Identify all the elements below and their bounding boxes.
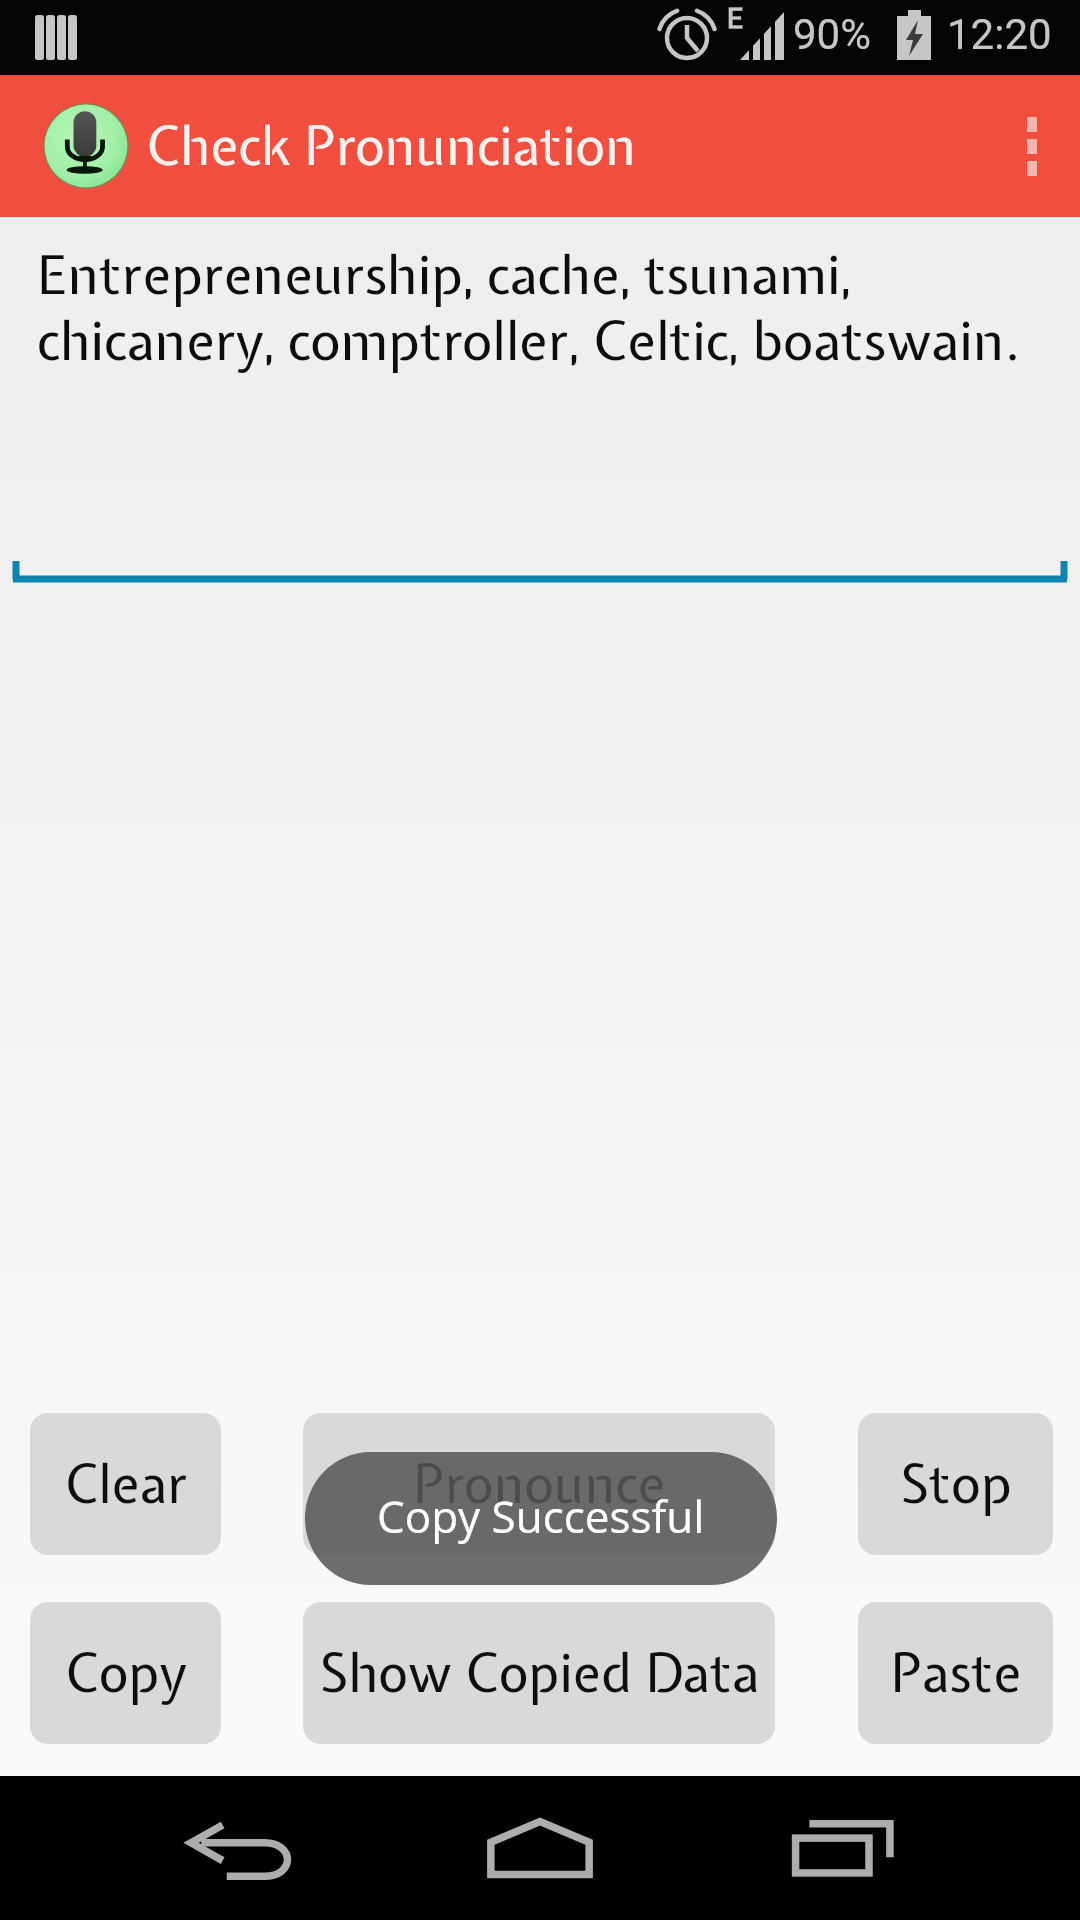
staticText: Paste (890, 1638, 1022, 1708)
staticText: Clear (64, 1449, 188, 1519)
staticText: Entrepreneurship, cache, tsunami, chican… (37, 239, 1021, 376)
staticText: Copy (65, 1638, 187, 1708)
button[interactable]: Back (175, 1817, 305, 1887)
button[interactable]: Recent apps (775, 1812, 911, 1884)
staticText: 12:20 (947, 10, 1052, 59)
staticText: 90% (793, 10, 871, 59)
button[interactable]: More options (984, 75, 1080, 217)
button[interactable]: Stop (858, 1413, 1053, 1555)
staticText: Copy Successful (377, 1486, 705, 1546)
staticText: E (727, 2, 743, 35)
staticText: Show Copied Data (319, 1638, 760, 1708)
button[interactable]: Show Copied Data (303, 1602, 775, 1744)
button[interactable]: Paste (858, 1602, 1053, 1744)
button[interactable]: Home (470, 1812, 610, 1884)
staticText: Stop (900, 1449, 1012, 1519)
button[interactable]: Pronounce (303, 1413, 775, 1555)
button[interactable]: Copy (30, 1602, 221, 1744)
staticText: Check Pronunciation (146, 111, 636, 181)
staticText: Pronounce (413, 1449, 666, 1519)
button[interactable]: Clear (30, 1413, 221, 1555)
